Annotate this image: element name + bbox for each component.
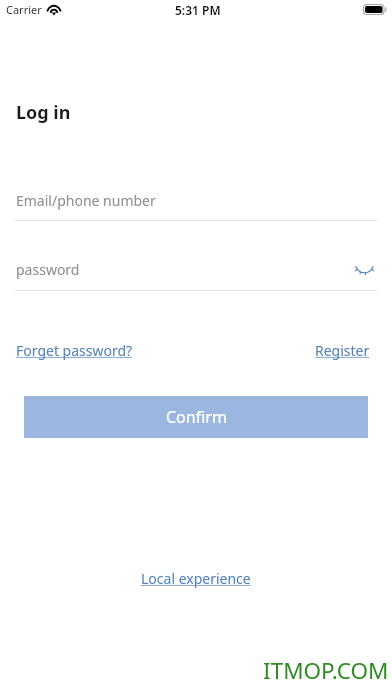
staticText: Confirm [166, 406, 227, 428]
button[interactable]: Forget password? [8, 333, 141, 368]
button[interactable]: Confirm [24, 396, 368, 438]
staticText: password [16, 260, 80, 279]
button[interactable]: Email/phone number [15, 186, 377, 220]
staticText: Carrier [6, 2, 42, 17]
staticText: Email/phone number [16, 191, 156, 210]
staticText: Local experience [141, 569, 251, 588]
button[interactable]: Local experience [129, 561, 263, 596]
staticText: Log in [16, 100, 71, 125]
staticText: ITMOP.COM [263, 655, 389, 686]
staticText: Register [315, 341, 370, 360]
staticText: Forget password? [16, 341, 133, 360]
button[interactable]: Register [307, 333, 378, 368]
staticText: 5:31 PM [175, 2, 221, 18]
button[interactable]: password [15, 256, 345, 290]
button[interactable]: Show password [350, 257, 378, 283]
